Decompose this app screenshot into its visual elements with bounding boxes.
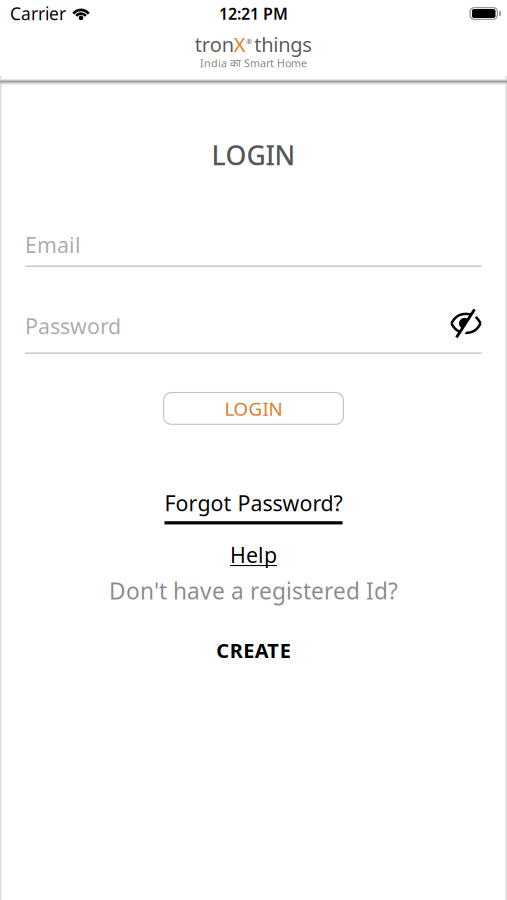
staticText: India का Smart Home: [200, 56, 307, 70]
button[interactable]: CREATE: [216, 637, 291, 663]
staticText: Forgot Password?: [164, 489, 342, 517]
staticText: Don't have a registered Id?: [109, 576, 398, 606]
button[interactable]: Forgot Password?: [164, 489, 342, 524]
staticText: LOGIN: [211, 137, 295, 173]
staticText: tron: [195, 31, 234, 58]
button[interactable]: LOGIN: [163, 392, 344, 425]
button[interactable]: Email: [25, 231, 482, 267]
staticText: ®: [246, 37, 252, 46]
staticText: Email: [25, 231, 81, 259]
button[interactable]: Password: [25, 315, 482, 354]
staticText: 12:21 PM: [219, 3, 288, 24]
staticText: X: [234, 31, 246, 58]
staticText: Help: [230, 540, 277, 569]
staticText: Carrier: [10, 2, 66, 25]
button[interactable]: Help: [230, 540, 277, 569]
staticText: CREATE: [216, 637, 291, 663]
staticText: Password: [25, 312, 121, 340]
button[interactable]: Show password: [450, 310, 482, 336]
staticText: LOGIN: [224, 396, 282, 421]
staticText: things: [254, 31, 312, 58]
